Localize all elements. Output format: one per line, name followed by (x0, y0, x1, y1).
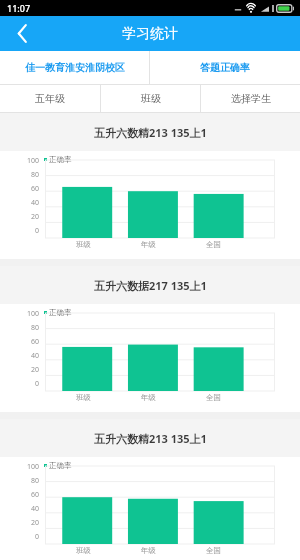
staticText: 0 (22, 532, 39, 542)
staticText: 班级 (141, 92, 161, 105)
button[interactable]: 选择学生 (201, 85, 300, 112)
staticText: 五升六数精213 135上1 (94, 125, 207, 140)
button[interactable]: 答题正确率 (150, 51, 300, 84)
staticText: 100 (22, 462, 39, 472)
staticText: 年级 (141, 393, 156, 402)
staticText: 五年级 (35, 92, 65, 105)
staticText: 五升六数精213 135上1 (94, 431, 207, 446)
staticText: 正确率 (49, 155, 72, 164)
button[interactable]: 佳一教育淮安淮阴校区 (0, 51, 149, 84)
staticText: 班级 (76, 546, 91, 555)
staticText: 班级 (76, 240, 91, 249)
staticText: 80 (22, 170, 39, 180)
button[interactable]: 班级 (101, 85, 200, 112)
button[interactable]: 五年级 (0, 85, 100, 112)
staticText: 全国 (206, 240, 221, 249)
staticText: 40 (22, 351, 39, 361)
staticText: 80 (22, 476, 39, 486)
staticText: 全国 (206, 393, 221, 402)
button[interactable]: Back (0, 16, 44, 51)
staticText: 40 (22, 198, 39, 208)
staticText: 五升六数据217 135上1 (94, 278, 207, 293)
staticText: 60 (22, 337, 39, 347)
staticText: 年级 (141, 546, 156, 555)
staticText: 20 (22, 518, 39, 528)
staticText: 0 (22, 226, 39, 236)
staticText: 0 (22, 379, 39, 389)
button[interactable]: 五升六数精213 135上1 (0, 113, 300, 259)
staticText: 20 (22, 365, 39, 375)
staticText: 40 (22, 504, 39, 514)
staticText: 80 (22, 323, 39, 333)
staticText: 答题正确率 (200, 61, 250, 74)
staticText: 班级 (76, 393, 91, 402)
staticText: 60 (22, 184, 39, 194)
staticText: 选择学生 (231, 92, 271, 105)
staticText: 11:07 (7, 2, 31, 14)
staticText: 全国 (206, 546, 221, 555)
staticText: 正确率 (49, 308, 72, 317)
staticText: 60 (22, 490, 39, 500)
staticText: 佳一教育淮安淮阴校区 (25, 61, 125, 74)
staticText: 100 (22, 309, 39, 319)
button[interactable]: 五升六数精213 135上1 (0, 419, 300, 560)
staticText: 正确率 (49, 461, 72, 470)
staticText: 20 (22, 212, 39, 222)
staticText: 学习统计 (122, 25, 178, 43)
staticText: 100 (22, 156, 39, 166)
button[interactable]: 五升六数据217 135上1 (0, 266, 300, 412)
staticText: 年级 (141, 240, 156, 249)
